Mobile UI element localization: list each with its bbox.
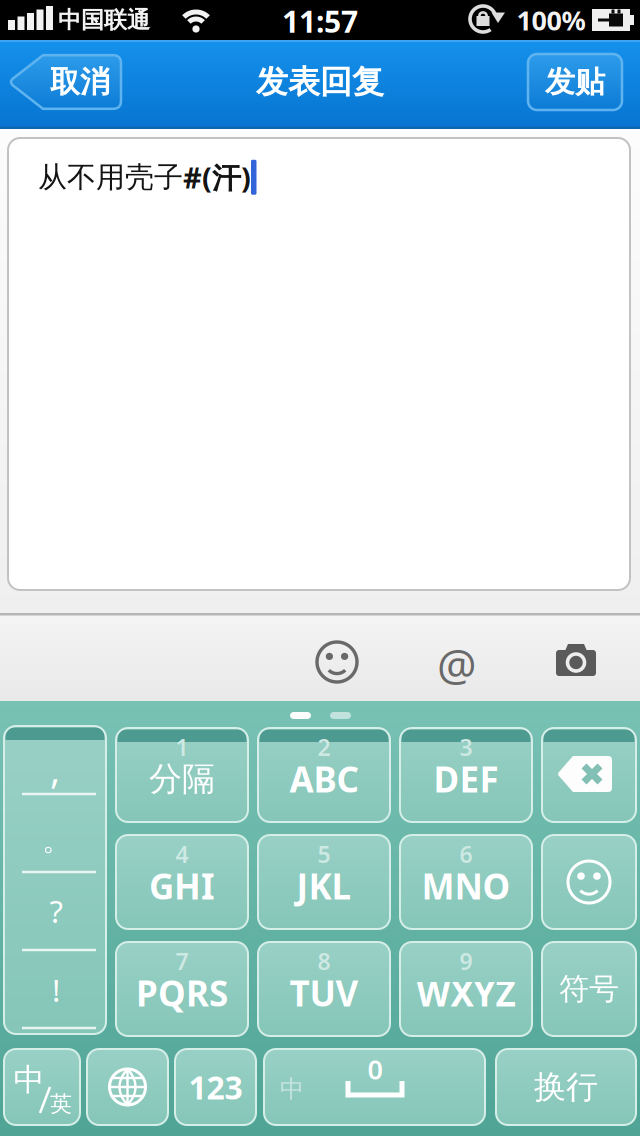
button[interactable]: 发贴 [528,54,622,110]
staticText: JKL [296,863,351,909]
button[interactable]: 中/英 [4,1049,80,1125]
staticText: 7 [175,946,188,976]
staticText: 发贴 [545,64,605,100]
button[interactable]: 空格 [264,1049,485,1125]
button[interactable]: 2 [258,728,390,822]
button[interactable]: 取消 [8,54,124,110]
button[interactable]: 1 [116,728,248,822]
button[interactable]: 4 [116,835,248,929]
button[interactable]: 符号 [542,942,636,1036]
button[interactable]: 5 [258,835,390,929]
staticText: 123 [188,1066,242,1108]
staticText: ABC [289,756,358,802]
button[interactable]: 123 [175,1049,256,1125]
button[interactable]: 相机 [555,642,599,680]
button[interactable]: 6 [400,835,532,929]
staticText: 2 [317,732,330,762]
staticText: 中国联通 [58,6,150,34]
staticText: 从不用壳子 [38,159,183,195]
staticText: TUV [289,970,358,1016]
staticText: @ [437,635,477,693]
staticText: ! [52,969,60,1011]
staticText: 6 [459,839,472,869]
staticText: MNO [421,863,510,909]
staticText: ? [49,890,62,932]
staticText: 1 [175,732,188,762]
button[interactable]: 换行 [496,1049,636,1125]
staticText: WXYZ [416,970,515,1016]
staticText: 9 [459,946,472,976]
staticText: , [50,744,60,794]
button[interactable]: 9 [400,942,532,1036]
button[interactable]: 删除 [542,728,636,822]
staticText: 4 [175,839,188,869]
staticText: 英 [50,1090,72,1117]
staticText: PQRS [136,970,228,1016]
staticText: 中 [13,1061,44,1099]
staticText: 100% [516,2,585,38]
button[interactable]: 切换输入法 [87,1049,168,1125]
staticText: 5 [317,839,330,869]
button[interactable]: 表情 [542,835,636,929]
staticText: 中 [280,1074,304,1104]
button[interactable]: 3 [400,728,532,822]
staticText: 3 [459,732,472,762]
staticText: 符号 [559,971,619,1007]
staticText: 分隔 [149,759,215,799]
staticText: 发表回复 [256,62,384,102]
staticText: 取消 [50,64,110,100]
button[interactable]: 8 [258,942,390,1036]
button[interactable]: 7 [116,942,248,1036]
button[interactable]: 标点 [4,726,106,1034]
staticText: #(汗) [183,158,251,196]
button[interactable]: 表情 [313,638,361,686]
button[interactable]: 提到 [425,634,489,694]
staticText: 换行 [534,1067,598,1107]
staticText: 0 [367,1051,382,1087]
staticText: 11:57 [282,1,358,41]
staticText: 。 [42,822,72,858]
staticText: GHI [149,863,215,909]
staticText: 8 [317,946,330,976]
staticText: DEF [433,756,498,802]
